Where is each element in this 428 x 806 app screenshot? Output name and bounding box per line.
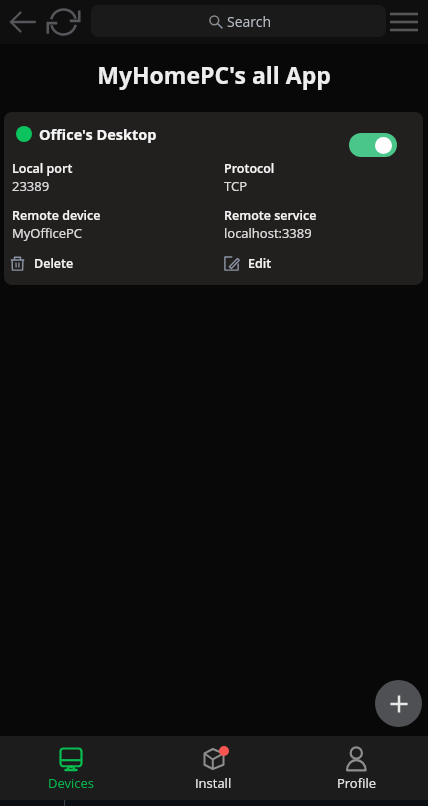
staticText: TCP bbox=[224, 177, 247, 195]
button[interactable]: Delete bbox=[10, 255, 74, 272]
button[interactable]: Toggle connection bbox=[349, 133, 397, 157]
staticText: Remote service bbox=[224, 207, 317, 224]
staticText: Devices bbox=[48, 774, 94, 792]
button[interactable]: Devices bbox=[0, 736, 142, 800]
staticText: MyHomePC's all App bbox=[97, 59, 331, 90]
button[interactable]: Refresh bbox=[46, 4, 82, 40]
button[interactable]: Search bbox=[91, 5, 386, 37]
button[interactable]: Install bbox=[142, 736, 285, 800]
staticText: MyOfficePC bbox=[12, 224, 83, 242]
button[interactable]: Add bbox=[375, 680, 422, 727]
staticText: Profile bbox=[337, 774, 376, 792]
staticText: Install bbox=[195, 774, 232, 792]
staticText: Delete bbox=[34, 255, 74, 272]
staticText: Remote device bbox=[12, 207, 101, 224]
staticText: Office's Desktop bbox=[39, 125, 157, 145]
button[interactable]: Back bbox=[5, 4, 41, 40]
button[interactable]: Menu bbox=[386, 4, 422, 40]
staticText: Protocol bbox=[224, 160, 275, 177]
button[interactable]: Edit bbox=[224, 255, 272, 272]
staticText: Edit bbox=[248, 255, 272, 272]
staticText: Search bbox=[227, 12, 272, 31]
staticText: localhost:3389 bbox=[224, 224, 312, 242]
staticText: 23389 bbox=[12, 177, 50, 195]
staticText: Local port bbox=[12, 160, 73, 177]
button[interactable]: Profile bbox=[285, 736, 428, 800]
